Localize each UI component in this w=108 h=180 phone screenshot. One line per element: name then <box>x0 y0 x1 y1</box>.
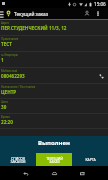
button[interactable]: СПИСОК ЗАКАЗОВ <box>0 153 36 166</box>
button[interactable]: Назначение / Расстояние <box>0 84 108 99</box>
staticText: ЦЕНТР <box>1 89 17 95</box>
staticText: ПЕР.СТУДЕНЧЕСКИЙ 11/3, 12 <box>1 25 67 31</box>
button[interactable]: Примечание <box>0 36 108 52</box>
staticText: 080462293 <box>1 73 25 79</box>
button[interactable]: ТЕКУЩИЙ ЗАКАЗ <box>36 153 72 166</box>
staticText: ТЕКУЩИЙ ЗАКАЗ <box>46 156 63 164</box>
staticText: КАРТА <box>85 157 96 162</box>
button[interactable]: Menu <box>0 8 4 19</box>
staticText: Адрес <box>1 21 10 25</box>
staticText: Назначение / Расстояние <box>1 85 36 89</box>
staticText: 1 <box>1 57 4 63</box>
staticText: Текущий заказ <box>14 11 49 18</box>
button[interactable]: Account <box>84 8 90 19</box>
staticText: Выполнен <box>38 139 70 147</box>
button[interactable]: Выполнен <box>0 136 108 153</box>
staticText: Время <box>1 115 10 119</box>
staticText: Мобильный <box>1 69 18 73</box>
button[interactable]: Мобильный <box>0 68 108 84</box>
staticText: ТЕСТ <box>1 41 12 47</box>
button[interactable]: Цена <box>0 99 108 114</box>
staticText: Цена <box>1 100 8 104</box>
staticText: № Квартиры <box>1 53 18 57</box>
staticText: Примечание <box>1 37 19 41</box>
button[interactable]: Время <box>0 114 108 129</box>
button[interactable]: Адрес <box>0 20 108 36</box>
button[interactable]: Call <box>97 72 105 80</box>
staticText: СПИСОК ЗАКАЗОВ <box>10 156 26 164</box>
button[interactable]: Recents <box>79 170 86 177</box>
staticText: 15:06 <box>94 1 106 7</box>
button[interactable]: Home <box>51 170 58 177</box>
staticText: 22:20 <box>1 119 13 125</box>
button[interactable]: More options <box>96 8 100 19</box>
button[interactable]: № Квартиры <box>0 52 108 68</box>
staticText: 30 <box>1 104 7 110</box>
button[interactable]: КАРТА <box>72 153 108 166</box>
button[interactable]: Back <box>22 170 29 177</box>
